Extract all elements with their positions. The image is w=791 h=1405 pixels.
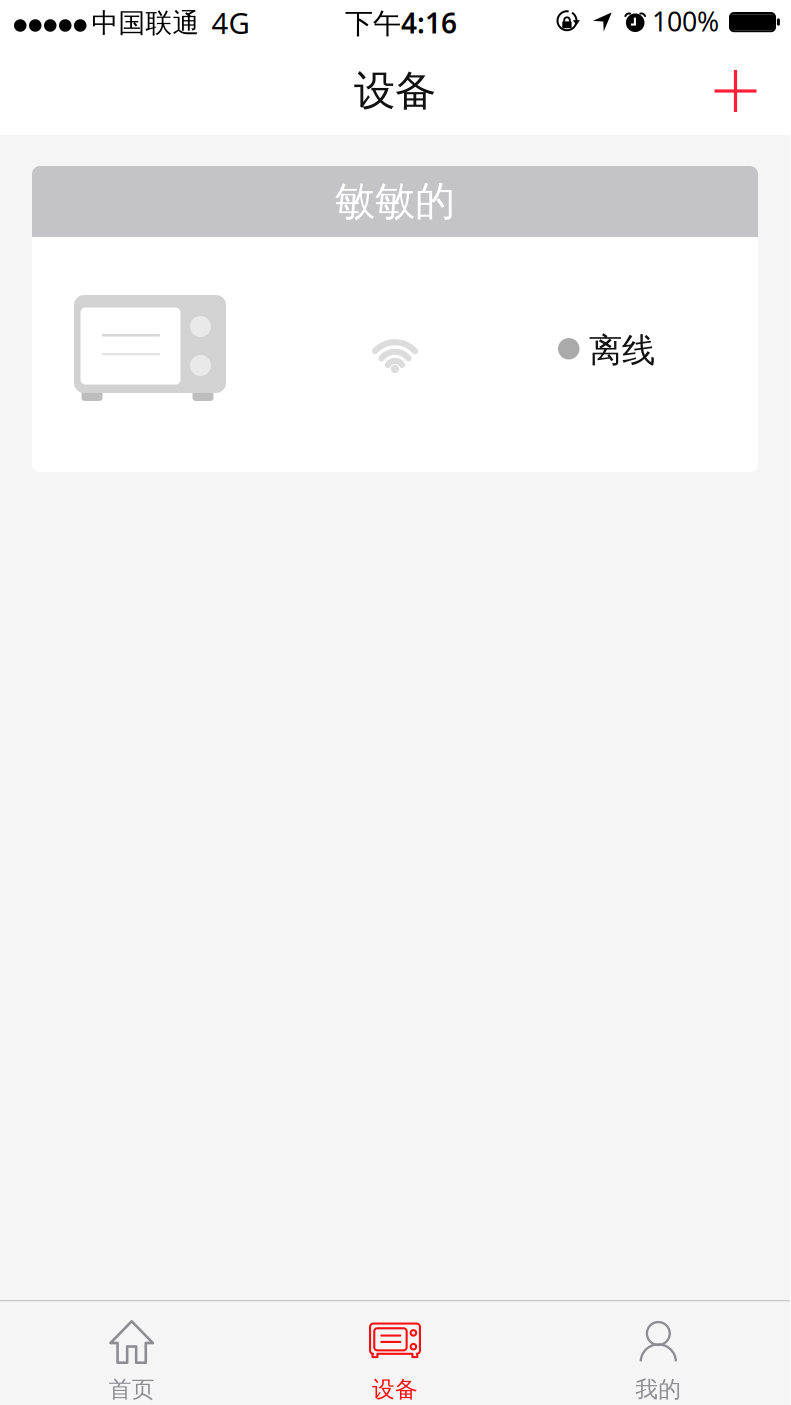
button[interactable]: 敏敏的 <box>32 166 758 472</box>
staticText: 敏敏的 <box>335 177 455 226</box>
staticText: 下午4:16 <box>345 4 457 41</box>
staticText: 4G <box>211 3 249 42</box>
staticText: 离线 <box>589 330 655 371</box>
button[interactable]: 首页 <box>0 1301 263 1405</box>
button[interactable]: 设备 <box>263 1301 527 1405</box>
staticText: 我的 <box>635 1375 681 1403</box>
staticText: 设备 <box>354 66 436 116</box>
staticText: 100% <box>652 3 719 39</box>
button[interactable]: 我的 <box>527 1301 790 1405</box>
button[interactable]: Add device <box>700 55 771 126</box>
staticText: 首页 <box>109 1375 155 1403</box>
staticText: 设备 <box>372 1375 418 1403</box>
staticText: 中国联通 <box>91 7 199 39</box>
